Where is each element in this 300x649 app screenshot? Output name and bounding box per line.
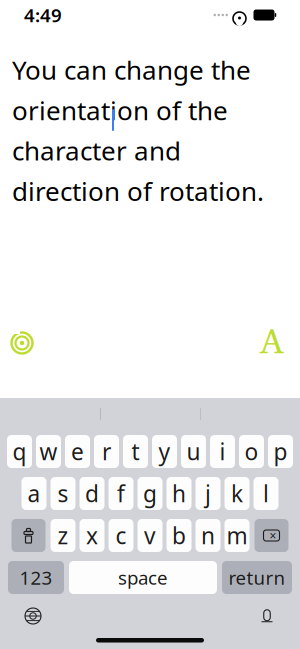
staticText: m	[226, 520, 247, 550]
staticText: x	[86, 520, 98, 550]
staticText: g	[143, 478, 157, 508]
button[interactable]: j	[195, 477, 220, 510]
staticText: r	[102, 436, 111, 466]
button[interactable]: s	[50, 477, 75, 510]
staticText: n	[201, 520, 215, 550]
button[interactable]: Next keyboard	[16, 601, 50, 631]
button[interactable]: t	[123, 435, 148, 468]
button[interactable]: space	[69, 561, 217, 594]
staticText: p	[273, 436, 287, 466]
button[interactable]: q	[7, 435, 32, 468]
button[interactable]: f	[108, 477, 133, 510]
staticText: You can change the orientation of the ch…	[12, 52, 264, 209]
staticText: o	[244, 436, 258, 466]
button[interactable]: 123	[8, 561, 64, 594]
staticText: f	[117, 478, 125, 508]
button[interactable]: n	[195, 519, 220, 552]
button[interactable]: v	[137, 519, 162, 552]
button[interactable]: Dictate	[250, 601, 284, 631]
button[interactable]: m	[224, 519, 249, 552]
button[interactable]: c	[108, 519, 133, 552]
button[interactable]: u	[181, 435, 206, 468]
staticText: 4:49	[24, 3, 62, 27]
button[interactable]: r	[94, 435, 119, 468]
button[interactable]: b	[166, 519, 191, 552]
staticText: z	[57, 520, 68, 550]
staticText: i	[219, 436, 225, 466]
staticText: u	[186, 436, 200, 466]
staticText: b	[172, 520, 186, 550]
button[interactable]: return	[222, 561, 292, 594]
staticText: w	[39, 436, 57, 466]
button[interactable]: d	[79, 477, 104, 510]
button[interactable]: h	[166, 477, 191, 510]
staticText: d	[85, 478, 99, 508]
staticText: space	[118, 565, 168, 590]
staticText: e	[71, 436, 84, 466]
button[interactable]: y	[152, 435, 177, 468]
staticText: j	[205, 478, 211, 508]
button[interactable]: k	[224, 477, 249, 510]
staticText: c	[115, 520, 126, 550]
staticText: v	[144, 520, 156, 550]
button[interactable]: e	[65, 435, 90, 468]
button[interactable]: i	[210, 435, 235, 468]
staticText: a	[27, 478, 40, 508]
button[interactable]: w	[36, 435, 61, 468]
button[interactable]: Delete	[254, 519, 288, 552]
button[interactable]: p	[268, 435, 293, 468]
button[interactable]: a	[21, 477, 46, 510]
staticText: t	[131, 436, 139, 466]
staticText: ×	[269, 527, 276, 543]
staticText: k	[231, 478, 243, 508]
staticText: y	[158, 436, 170, 466]
button[interactable]: x	[79, 519, 104, 552]
button[interactable]: l	[253, 477, 278, 510]
staticText: A	[260, 321, 283, 365]
button[interactable]: o	[239, 435, 264, 468]
staticText: h	[172, 478, 186, 508]
button[interactable]: z	[50, 519, 75, 552]
staticText: 123	[19, 565, 52, 590]
staticText: q	[12, 436, 26, 466]
button[interactable]: Shift	[11, 519, 45, 552]
staticText: return	[228, 565, 285, 590]
staticText: l	[263, 478, 269, 508]
staticText: s	[57, 478, 68, 508]
button[interactable]: g	[137, 477, 162, 510]
